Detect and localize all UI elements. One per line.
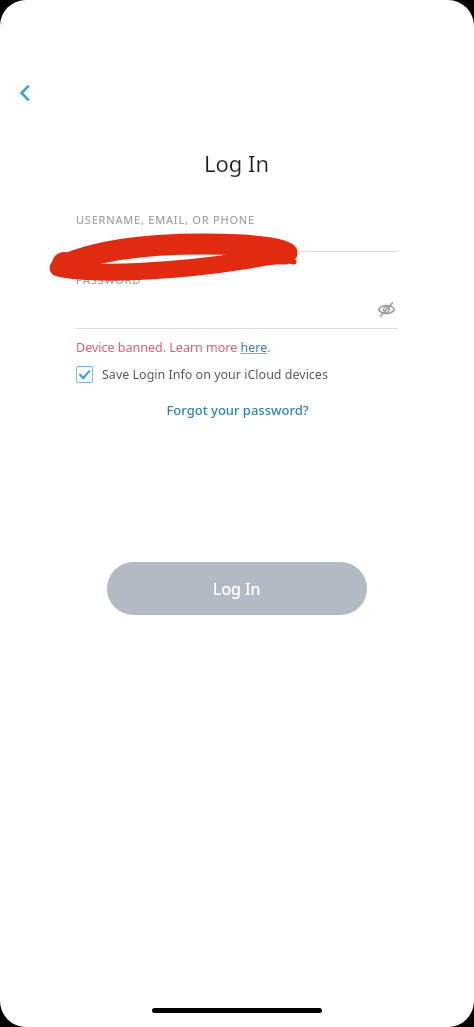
staticText: Log In [204, 148, 270, 178]
staticText: Forgot your password? [166, 401, 309, 419]
staticText: PASSWORD [76, 272, 142, 287]
staticText: Log In [213, 578, 261, 600]
staticText: USERNAME, EMAIL, OR PHONE [76, 212, 255, 227]
button[interactable]: Back [6, 74, 44, 112]
button[interactable]: Save Login Info on your iCloud devices [76, 366, 398, 383]
button[interactable]: Device banned. Learn more here. [76, 339, 271, 356]
button[interactable]: Show password [374, 297, 398, 321]
staticText: Device banned. Learn more here. [76, 339, 271, 356]
button[interactable]: Forgot your password? [76, 401, 398, 419]
button[interactable]: Log In [107, 562, 367, 615]
staticText: Save Login Info on your iCloud devices [102, 366, 328, 383]
